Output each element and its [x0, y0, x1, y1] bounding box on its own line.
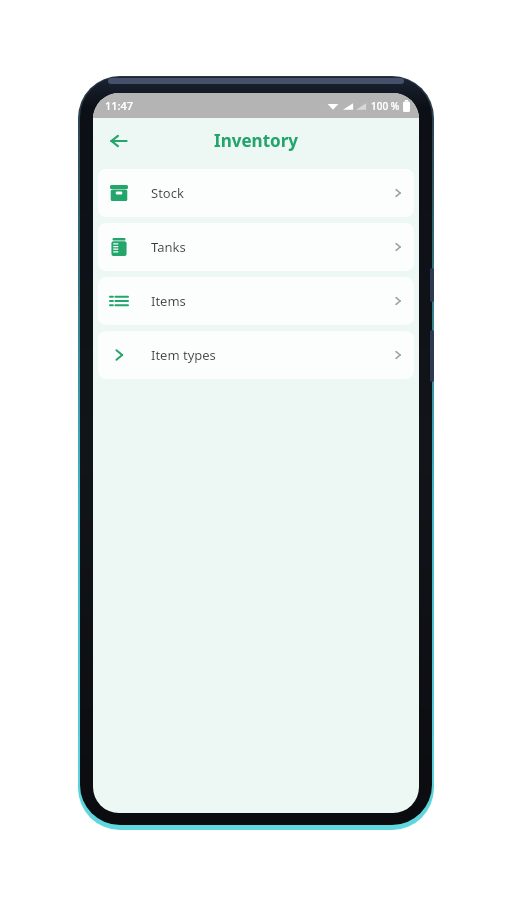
button[interactable]: Item types	[98, 331, 414, 379]
staticText: Tanks	[151, 238, 392, 256]
staticText: 100 %	[371, 99, 400, 113]
staticText: 11:47	[105, 98, 134, 113]
button[interactable]: Back	[101, 123, 137, 159]
button[interactable]: Tanks	[98, 223, 414, 271]
staticText: Item types	[151, 346, 392, 364]
staticText: Inventory	[214, 129, 298, 152]
button[interactable]: Items	[98, 277, 414, 325]
staticText: Stock	[151, 184, 392, 202]
staticText: Items	[151, 292, 392, 310]
button[interactable]: Stock	[98, 169, 414, 217]
